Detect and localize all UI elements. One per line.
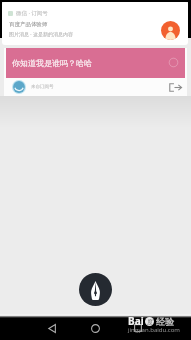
other: Open [169,83,182,92]
button[interactable]: 来自订阅号 [4,78,187,96]
staticText: 图片消息 · 这是新的消息内容 [9,31,73,38]
staticText: jingyan.baidu.com [128,326,180,334]
staticText: 你知道我是谁吗？哈哈 [12,58,92,68]
staticText: Bai [128,314,144,328]
button[interactable]: Back [42,318,62,338]
button[interactable]: Recents [128,318,148,338]
staticText: 经验 [156,316,174,327]
other: Comment [168,57,179,68]
button[interactable]: 你知道我是谁吗？哈哈 [6,48,185,78]
staticText: 度 [147,318,153,326]
button[interactable]: 微信 · 订阅号 [2,2,188,45]
staticText: 百度产品体验师 [9,21,48,28]
button[interactable]: Compose [79,273,112,306]
staticText: 来自订阅号 [31,84,54,90]
staticText: 微信 · 订阅号 [16,9,48,17]
button[interactable]: Home [85,318,105,338]
